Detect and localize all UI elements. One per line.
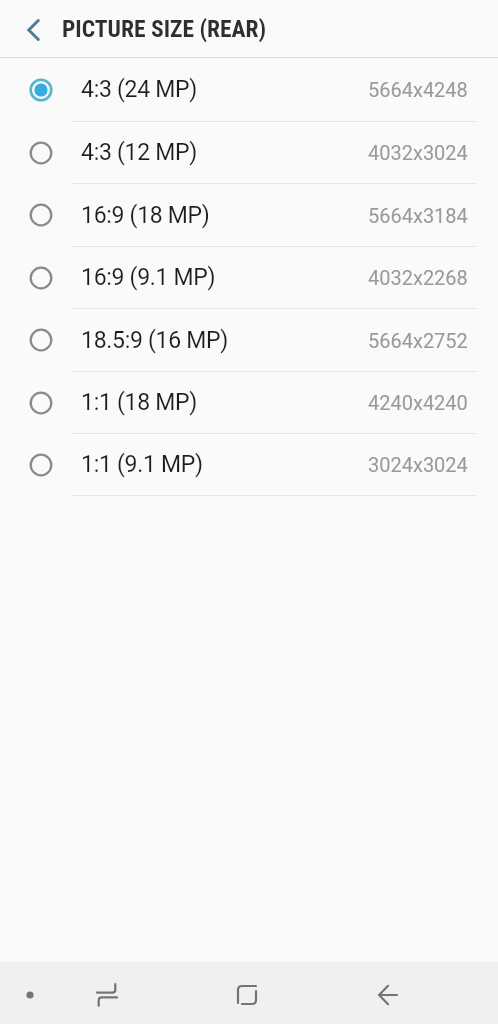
staticText: 16:9 (18 MP) — [81, 202, 210, 229]
staticText: 3024x3024 — [368, 453, 468, 476]
button[interactable] — [0, 1, 56, 57]
staticText: 4:3 (24 MP) — [81, 76, 197, 103]
button[interactable] — [364, 969, 412, 1017]
button[interactable] — [223, 969, 271, 1017]
staticText: 16:9 (9.1 MP) — [81, 264, 216, 291]
staticText: 5664x2752 — [368, 329, 468, 352]
button[interactable]: 16:9 (18 MP) — [0, 184, 498, 247]
staticText: 18.5:9 (16 MP) — [81, 327, 228, 354]
button[interactable]: 1:1 (18 MP) — [0, 372, 498, 434]
button[interactable] — [16, 979, 44, 1007]
staticText: 4032x3024 — [368, 141, 468, 164]
staticText: 5664x4248 — [368, 78, 468, 101]
staticText: 1:1 (9.1 MP) — [81, 451, 203, 478]
button[interactable]: 1:1 (9.1 MP) — [0, 434, 498, 496]
staticText: 1:1 (18 MP) — [81, 389, 197, 416]
button[interactable]: 18.5:9 (16 MP) — [0, 309, 498, 372]
staticText: 4:3 (12 MP) — [81, 139, 197, 166]
staticText: PICTURE SIZE (REAR) — [62, 15, 267, 43]
button[interactable]: 4:3 (12 MP) — [0, 122, 498, 184]
button[interactable]: 4:3 (24 MP) — [0, 58, 498, 122]
staticText: 4240x4240 — [368, 391, 468, 414]
staticText: 5664x3184 — [368, 204, 468, 227]
staticText: 4032x2268 — [368, 266, 468, 289]
button[interactable]: 16:9 (9.1 MP) — [0, 247, 498, 309]
button[interactable] — [83, 969, 131, 1017]
